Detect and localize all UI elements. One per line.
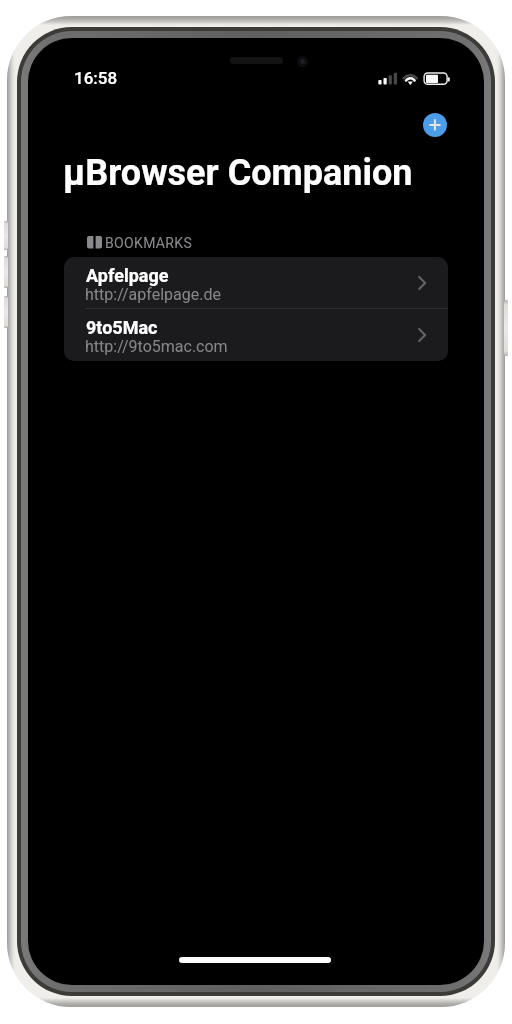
- staticText: BOOKMARKS: [105, 235, 193, 251]
- staticText: 9to5Mac: [86, 317, 158, 338]
- button[interactable]: Add bookmark: [423, 113, 447, 137]
- staticText: 16:58: [74, 68, 118, 88]
- staticText: http://apfelpage.de: [85, 285, 221, 304]
- button[interactable]: Apfelpage: [64, 257, 448, 309]
- staticText: Apfelpage: [86, 265, 169, 286]
- button[interactable]: 9to5Mac: [64, 309, 448, 361]
- staticText: http://9to5mac.com: [85, 337, 228, 356]
- staticText: µBrowser Companion: [63, 152, 413, 194]
